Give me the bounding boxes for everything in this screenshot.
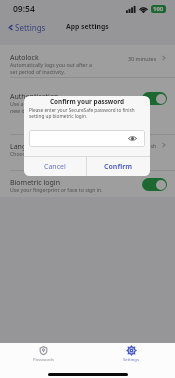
staticText: Use a second factor when logging in from… (10, 100, 116, 114)
staticText: 30 minutes (128, 55, 157, 62)
button[interactable]: Settings (87, 343, 175, 369)
staticText: English (138, 142, 157, 149)
staticText: Please enter your SecureSafe password to… (29, 107, 147, 120)
staticText: Biometric login (10, 178, 60, 188)
button[interactable] (142, 92, 167, 105)
button[interactable]: Cancel (24, 157, 86, 176)
button[interactable]: Passwords (0, 343, 87, 369)
staticText: Passwords (33, 357, 54, 363)
button[interactable]: Show password (29, 130, 145, 147)
staticText: Confirm (104, 162, 133, 172)
button[interactable]: Language (0, 135, 175, 170)
staticText: App settings (66, 22, 109, 31)
button[interactable]: Confirm (87, 157, 150, 176)
staticText: 100 (153, 5, 164, 13)
staticText: Confirm your password (24, 97, 150, 106)
button[interactable] (142, 178, 167, 191)
staticText: Language (10, 142, 43, 152)
staticText: Authentication (10, 92, 59, 102)
staticText: Cancel (44, 162, 66, 172)
staticText: Settings (123, 357, 139, 363)
other: Show password (128, 134, 137, 143)
button[interactable]: Settings (6, 21, 47, 34)
button[interactable]: Authentication (0, 78, 175, 134)
button[interactable]: Biometric login (0, 171, 175, 196)
staticText: Settings (15, 22, 46, 33)
staticText: Use your fingerprint or face to sign in. (10, 186, 103, 193)
staticText: Autolock (10, 53, 39, 63)
staticText: Choose the language of the app. (10, 150, 90, 157)
staticText: 09:54 (13, 3, 35, 15)
button[interactable]: Autolock (0, 45, 175, 77)
staticText: Automatically logs you out after a set p… (10, 61, 92, 75)
